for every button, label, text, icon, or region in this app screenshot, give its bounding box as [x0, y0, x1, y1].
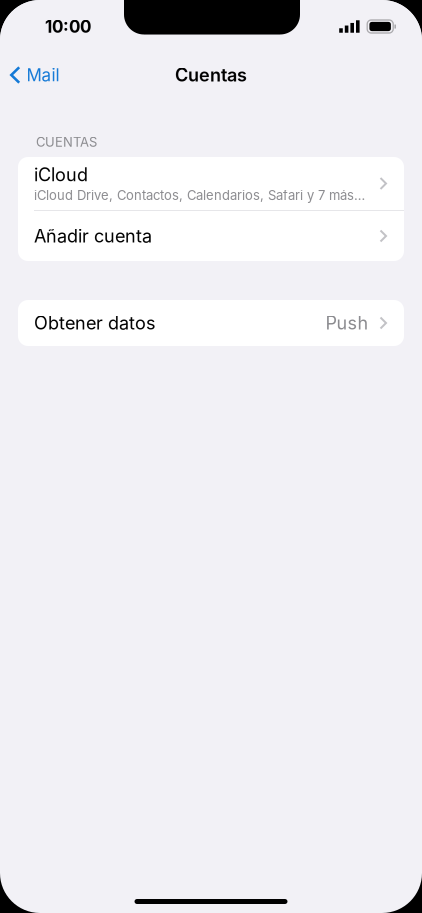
- button[interactable]: iCloud: [18, 157, 404, 210]
- button[interactable]: Mail: [0, 53, 71, 97]
- staticText: Mail: [26, 65, 59, 85]
- button[interactable]: Añadir cuenta: [18, 211, 404, 261]
- staticText: Obtener datos: [34, 312, 156, 334]
- staticText: iCloud: [34, 164, 88, 185]
- staticText: iCloud Drive, Contactos, Calendarios, Sa…: [34, 187, 365, 203]
- staticText: Cuentas: [175, 64, 247, 86]
- staticText: Añadir cuenta: [34, 225, 152, 247]
- button[interactable]: Obtener datos: [18, 300, 404, 346]
- staticText: Push: [325, 312, 368, 334]
- staticText: CUENTAS: [36, 134, 97, 150]
- staticText: 10:00: [45, 16, 91, 37]
